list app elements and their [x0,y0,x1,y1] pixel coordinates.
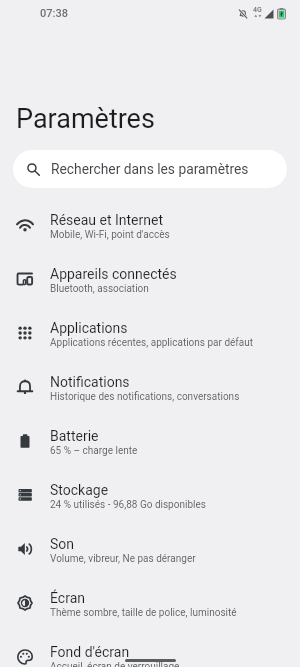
staticText: Applications [50,320,128,336]
staticText: Fond d'écran [50,644,130,660]
staticText: Batterie [50,428,99,444]
staticText: Notifications [50,374,130,390]
staticText: Réseau et Internet [50,212,164,228]
staticText: Accueil, écran de verrouillage [50,661,180,667]
staticText: Historique des notifications, conversati… [50,391,240,403]
staticText: Son [50,536,75,552]
staticText: Appareils connectés [50,266,177,282]
button[interactable]: Écran [0,577,300,631]
button[interactable]: Fond d'écran [0,631,300,667]
button[interactable]: Rechercher dans les paramètres [13,150,287,188]
staticText: 24 % utilisés - 96,88 Go disponibles [50,499,206,511]
staticText: Rechercher dans les paramètres [51,161,249,177]
staticText: Paramètres [16,103,155,135]
button[interactable]: Son [0,523,300,577]
button[interactable]: Réseau et Internet [0,199,300,253]
button[interactable]: Appareils connectés [0,253,300,307]
button[interactable]: Stockage [0,469,300,523]
button[interactable]: Batterie [0,415,300,469]
staticText: Mobile, Wi-Fi, point d'accès [50,229,170,241]
staticText: 07:38 [40,7,68,20]
staticText: Thème sombre, taille de police, luminosi… [50,607,237,619]
button[interactable]: Applications [0,307,300,361]
staticText: Bluetooth, association [50,283,149,295]
staticText: Écran [50,590,85,606]
staticText: 4G [253,6,262,14]
staticText: 65 % – charge lente [50,445,138,457]
staticText: Applications récentes, applications par … [50,337,254,349]
staticText: Stockage [50,482,109,498]
staticText: Volume, vibreur, Ne pas déranger [50,553,196,565]
button[interactable]: Notifications [0,361,300,415]
